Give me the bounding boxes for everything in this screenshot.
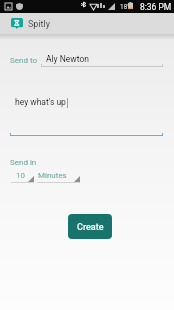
- staticText: 8:36 PM: [140, 2, 172, 12]
- button[interactable]: hey what's up: [10, 92, 163, 139]
- button[interactable]: Minutes: [37, 170, 80, 184]
- button[interactable]: Aly Newton: [41, 50, 163, 68]
- staticText: Minutes: [38, 171, 67, 180]
- staticText: Spitly: [28, 19, 50, 30]
- button[interactable]: 10: [11, 170, 34, 184]
- staticText: hey what's up: [15, 97, 66, 107]
- button[interactable]: Spitly app icon: [11, 18, 23, 29]
- staticText: Send in: [10, 158, 37, 167]
- button[interactable]: Create: [68, 214, 112, 239]
- staticText: Aly Newton: [46, 54, 89, 64]
- staticText: 18%: [120, 3, 133, 11]
- staticText: Create: [77, 222, 104, 233]
- staticText: 10: [16, 171, 25, 180]
- staticText: Send to: [10, 56, 38, 65]
